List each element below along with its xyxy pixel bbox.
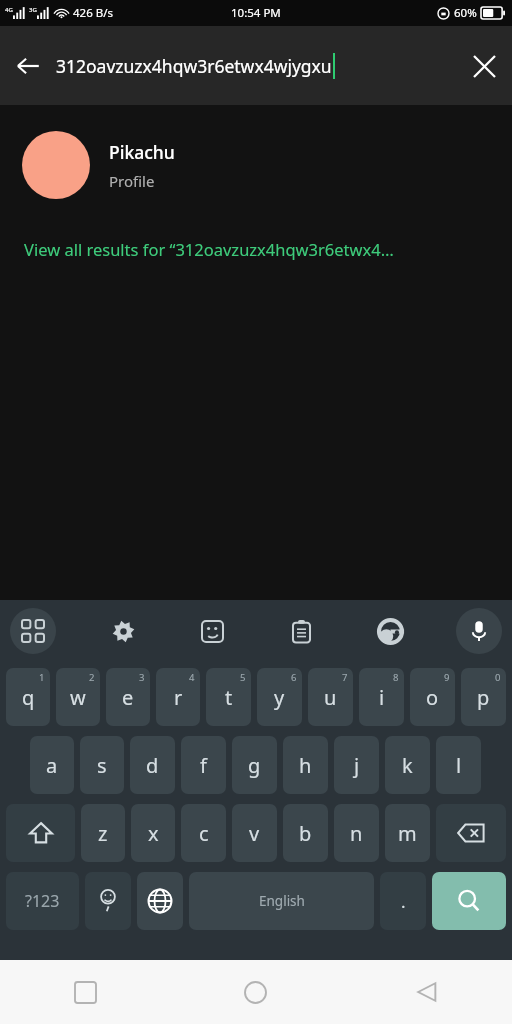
staticText: v (249, 820, 260, 847)
staticText: 5 (240, 671, 246, 684)
staticText: 8 (393, 671, 399, 684)
button[interactable]: . (380, 872, 426, 930)
button[interactable]: o (410, 668, 455, 726)
button[interactable]: English (189, 872, 374, 930)
button[interactable]: w (56, 668, 100, 726)
staticText: w (70, 684, 86, 711)
button[interactable]: Change language (137, 872, 183, 930)
staticText: m (398, 820, 417, 847)
button[interactable]: i (359, 668, 404, 726)
button[interactable]: Home (170, 960, 341, 1024)
button[interactable]: Search (432, 872, 506, 930)
button[interactable]: Themes (367, 608, 413, 654)
staticText: English (259, 892, 305, 910)
button[interactable]: k (385, 736, 430, 794)
button[interactable]: p (461, 668, 506, 726)
staticText: c (199, 820, 209, 847)
staticText: ?123 (25, 890, 60, 912)
staticText: j (354, 752, 360, 779)
button[interactable]: d (130, 736, 175, 794)
staticText: l (456, 752, 462, 779)
staticText: 60% (454, 5, 477, 21)
staticText: t (225, 684, 233, 711)
button[interactable]: b (283, 804, 328, 862)
button[interactable]: y (257, 668, 302, 726)
staticText: g (248, 752, 261, 779)
staticText: 7 (342, 671, 348, 684)
button[interactable]: q (6, 668, 50, 726)
button[interactable]: Apps (10, 608, 56, 654)
button[interactable]: a (30, 736, 74, 794)
staticText: i (379, 684, 385, 711)
staticText: 4 (189, 671, 195, 684)
staticText: 3 (139, 671, 145, 684)
staticText: 1 (39, 671, 45, 684)
button[interactable]: ?123 (6, 872, 79, 930)
staticText: y (274, 684, 285, 711)
button[interactable]: Back (0, 38, 56, 94)
staticText: u (324, 684, 337, 711)
staticText: e (122, 684, 134, 711)
button[interactable]: h (283, 736, 328, 794)
staticText: 6 (291, 671, 297, 684)
staticText: p (477, 684, 490, 711)
staticText: n (350, 820, 363, 847)
staticText: o (426, 684, 439, 711)
staticText: d (146, 752, 159, 779)
staticText: Profile (109, 171, 155, 191)
staticText: q (22, 684, 35, 711)
button[interactable]: Stickers (189, 608, 235, 654)
staticText: 3G (29, 6, 37, 14)
staticText: s (97, 752, 107, 779)
staticText: h (299, 752, 312, 779)
button[interactable]: f (181, 736, 226, 794)
staticText: View all results for “312oavzuzx4hqw3r6e… (24, 238, 394, 260)
staticText: b (299, 820, 312, 847)
button[interactable]: e (106, 668, 150, 726)
button[interactable]: x (131, 804, 175, 862)
button[interactable]: Back (341, 960, 512, 1024)
staticText: 312oavzuzx4hqw3r6etwx4wjygxu (56, 54, 332, 78)
staticText: 0 (495, 671, 501, 684)
staticText: a (46, 752, 58, 779)
staticText: 10:54 PM (231, 5, 281, 21)
button[interactable]: g (232, 736, 277, 794)
button[interactable]: v (232, 804, 277, 862)
button[interactable]: Backspace (436, 804, 506, 862)
staticText: f (200, 752, 207, 779)
button[interactable]: Shift (6, 804, 75, 862)
staticText: z (98, 820, 108, 847)
button[interactable]: Clipboard (278, 608, 324, 654)
button[interactable]: Voice input (456, 608, 502, 654)
button[interactable]: m (385, 804, 430, 862)
button[interactable]: r (156, 668, 200, 726)
button[interactable]: l (436, 736, 481, 794)
staticText: r (174, 684, 183, 711)
button[interactable]: s (80, 736, 124, 794)
staticText: 4G (5, 6, 13, 14)
button[interactable]: Clear (456, 38, 512, 94)
staticText: 2 (89, 671, 95, 684)
staticText: Pikachu (109, 140, 175, 164)
staticText: x (148, 820, 159, 847)
button[interactable]: z (81, 804, 125, 862)
button[interactable]: n (334, 804, 379, 862)
button[interactable]: Recent apps (0, 960, 170, 1024)
button[interactable]: Pikachu (0, 123, 512, 207)
staticText: . (401, 890, 406, 913)
staticText: k (402, 752, 413, 779)
button[interactable]: c (181, 804, 226, 862)
button[interactable]: t (206, 668, 251, 726)
button[interactable]: Settings (100, 608, 146, 654)
button[interactable]: u (308, 668, 353, 726)
button[interactable]: View all results for “312oavzuzx4hqw3r6e… (0, 229, 512, 269)
staticText: 9 (444, 671, 450, 684)
button[interactable]: j (334, 736, 379, 794)
staticText: 426 B/s (73, 5, 113, 21)
button[interactable]: Emoji (85, 872, 131, 930)
